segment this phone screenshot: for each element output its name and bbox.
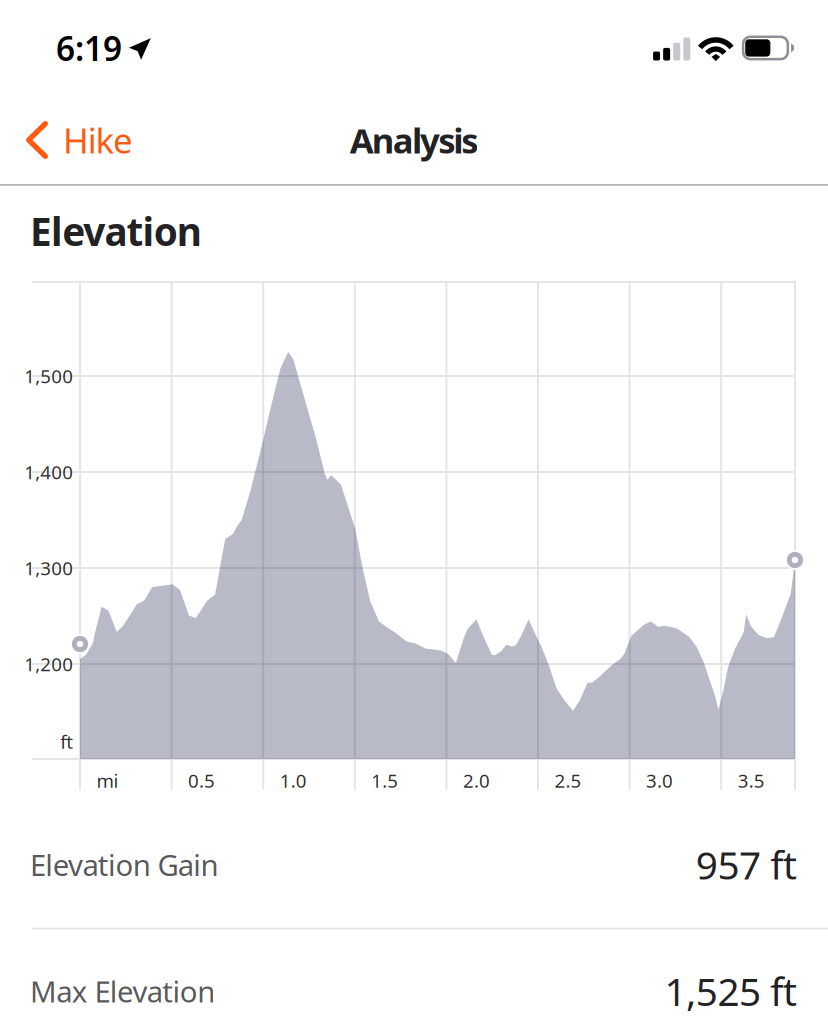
staticText: 1,525 ft — [664, 965, 797, 1017]
staticText: 1.0 — [280, 768, 307, 793]
staticText: ft — [60, 729, 73, 754]
staticText: 2.0 — [463, 768, 490, 793]
button[interactable]: Hike — [0, 96, 149, 184]
staticText: 1,200 — [24, 652, 73, 676]
staticText: Elevation Gain — [30, 845, 218, 884]
staticText: Max Elevation — [30, 971, 215, 1010]
staticText: 1,400 — [24, 460, 73, 484]
staticText: 2.5 — [554, 768, 581, 793]
staticText: 1.5 — [371, 768, 398, 793]
staticText: 957 ft — [696, 839, 797, 890]
staticText: mi — [96, 768, 118, 793]
staticText: Elevation — [30, 205, 202, 257]
staticText: Hike — [63, 117, 133, 163]
button[interactable]: Elevation Gain — [0, 800, 828, 929]
button[interactable]: Max Elevation — [0, 926, 828, 1032]
staticText: 6:19 — [56, 26, 122, 70]
staticText: 1,300 — [24, 556, 73, 580]
staticText: Analysis — [350, 117, 478, 163]
staticText: 0.5 — [188, 768, 215, 793]
staticText: 3.0 — [646, 768, 673, 793]
staticText: 1,500 — [24, 364, 73, 388]
staticText: 3.5 — [738, 768, 765, 793]
